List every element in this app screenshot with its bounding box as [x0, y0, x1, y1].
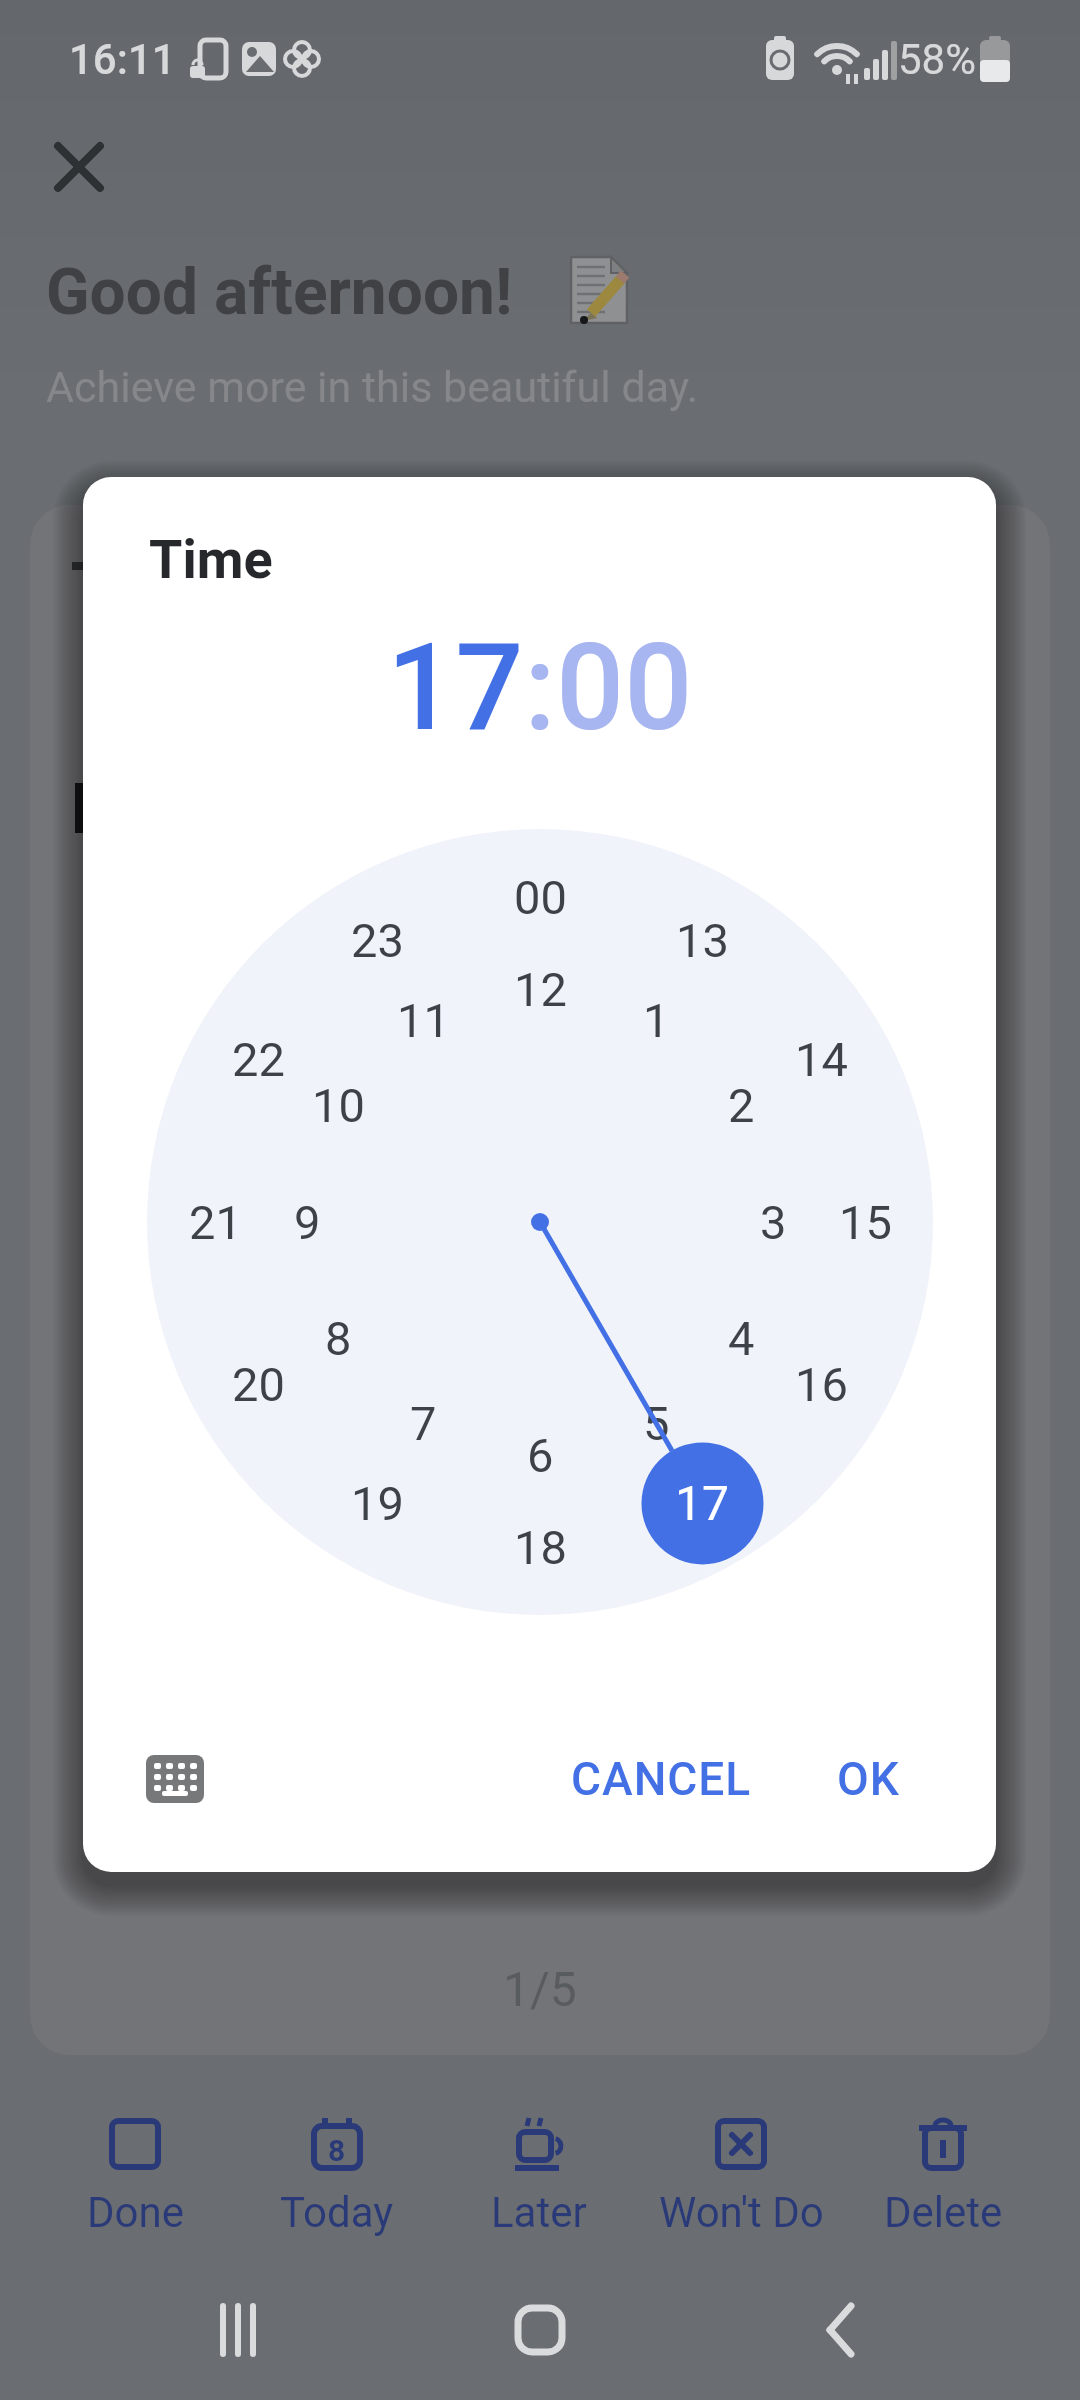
button[interactable]: [200, 2290, 280, 2370]
button[interactable]: [800, 2290, 880, 2370]
staticText: 13: [676, 913, 729, 968]
button[interactable]: Later: [449, 2106, 629, 2246]
staticText: 10: [312, 1078, 365, 1133]
staticText: 15: [839, 1195, 892, 1250]
staticText: 2: [728, 1078, 755, 1133]
staticText: 5: [643, 1396, 670, 1451]
button[interactable]: [143, 1749, 207, 1809]
staticText: Delete: [884, 2188, 1003, 2237]
button[interactable]: Delete: [853, 2106, 1033, 2246]
staticText: 19: [351, 1476, 404, 1531]
button[interactable]: 17: [641, 1442, 763, 1564]
button[interactable]: [500, 2290, 580, 2370]
staticText: 20: [232, 1357, 285, 1412]
staticText: 1: [643, 993, 670, 1048]
staticText: 21: [189, 1195, 242, 1250]
staticText: 17: [387, 618, 524, 759]
staticText: 4: [728, 1311, 755, 1366]
staticText: 12: [514, 962, 567, 1017]
staticText: Good afternoon!: [46, 255, 513, 330]
staticText: 6: [527, 1428, 554, 1483]
staticText: 7: [410, 1396, 437, 1451]
staticText: Time: [149, 528, 273, 591]
staticText: CANCEL: [571, 1752, 752, 1806]
staticText: 23: [351, 913, 404, 968]
button[interactable]: CANCEL: [546, 1747, 776, 1811]
staticText: 16: [795, 1357, 848, 1412]
staticText: 22: [232, 1032, 285, 1087]
staticText: 58%: [898, 35, 976, 84]
staticText: Achieve more in this beautiful day.: [46, 362, 699, 412]
staticText: Later: [491, 2188, 587, 2237]
staticText: 16:11: [69, 35, 176, 84]
button[interactable]: [50, 138, 108, 196]
staticText: OK: [837, 1752, 900, 1806]
staticText: 3: [760, 1195, 787, 1250]
staticText: 00: [514, 870, 567, 925]
staticText: Done: [87, 2188, 184, 2237]
staticText: 00: [556, 618, 693, 759]
staticText: Today: [280, 2188, 394, 2237]
staticText: 9: [294, 1195, 321, 1250]
button[interactable]: Today: [247, 2106, 427, 2246]
button[interactable]: OK: [813, 1747, 923, 1811]
staticText: :: [524, 618, 556, 759]
staticText: 17: [675, 1475, 729, 1531]
staticText: 1/5: [503, 1961, 577, 2017]
staticText: 18: [514, 1520, 567, 1575]
staticText: 11: [397, 993, 450, 1048]
staticText: Won't Do: [659, 2188, 824, 2237]
staticText: 8: [328, 2133, 346, 2168]
button[interactable]: Won't Do: [651, 2106, 831, 2246]
button[interactable]: Done: [45, 2106, 225, 2246]
staticText: 14: [795, 1032, 848, 1087]
staticText: 8: [325, 1311, 352, 1366]
